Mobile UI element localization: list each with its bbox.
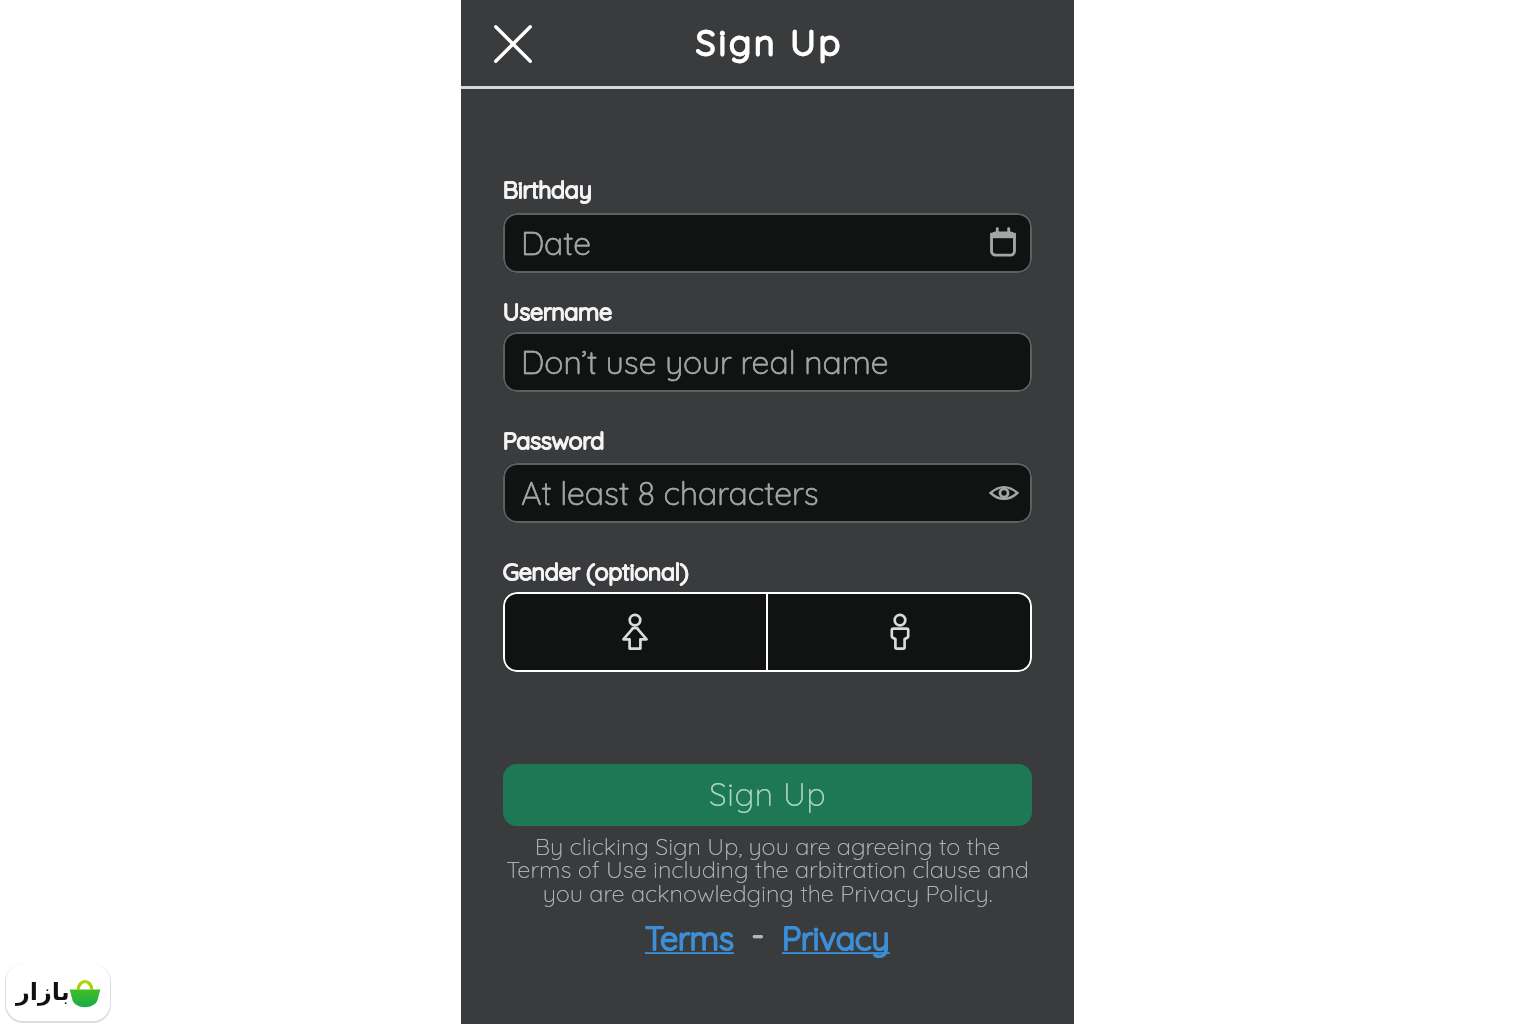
staticText: At least 8 characters [521,473,819,513]
staticText: Sign Up [709,774,827,814]
staticText: Username [503,297,613,326]
staticText: Privacy [782,918,890,958]
staticText: Birthday [503,175,592,204]
button[interactable]: At least 8 characters [503,463,1032,523]
staticText: By clicking Sign Up, you are agreeing to… [485,831,1050,908]
staticText: At least 8 characters [521,473,819,513]
staticText: - [752,916,764,954]
staticText: Gender (optional) [503,557,689,586]
other: Female [612,609,658,655]
staticText: Date [521,223,591,263]
staticText: Privacy [782,918,890,958]
staticText: - [752,916,764,954]
button[interactable]: Sign Up [503,764,1032,826]
staticText: Don’t use your real name [521,342,889,382]
staticText: Terms [645,918,734,958]
other: Pick date [988,228,1018,258]
staticText: Password [503,426,605,455]
staticText: Birthday [503,175,592,204]
button[interactable]: Don’t use your real name [503,332,1032,392]
other: Male [877,609,923,655]
staticText: بازار [16,978,70,1006]
staticText: Password [503,426,605,455]
button[interactable]: Female [503,592,766,672]
staticText: Gender (optional) [503,557,689,586]
button[interactable]: Male [768,592,1032,672]
staticText: Sign Up [696,20,844,64]
other: Show password [990,479,1018,507]
button[interactable]: Privacy [782,918,890,958]
staticText: Username [503,297,613,326]
button[interactable]: Close [481,12,545,76]
staticText: Sign Up [696,20,844,64]
button[interactable]: Bazaar [6,964,110,1021]
staticText: Terms [645,918,734,958]
button[interactable]: Terms [645,918,734,958]
staticText: Date [521,223,591,263]
button[interactable]: Date [503,213,1032,273]
staticText: Don’t use your real name [521,342,889,382]
